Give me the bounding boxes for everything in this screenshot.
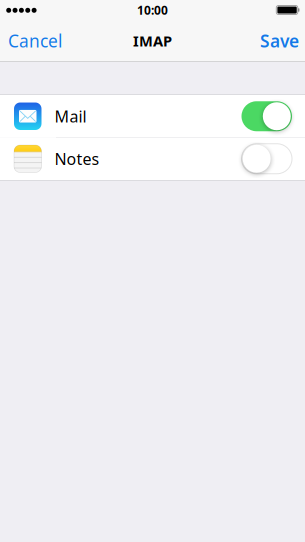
button[interactable]: Notes	[0, 137, 305, 180]
staticText: Notes	[54, 148, 99, 169]
staticText: Mail	[54, 106, 86, 127]
button[interactable]: Off	[235, 138, 305, 180]
staticText: Cancel	[8, 29, 62, 52]
staticText: Save	[260, 29, 299, 52]
button[interactable]: On	[235, 95, 305, 137]
button[interactable]: Save	[253, 20, 305, 61]
staticText: 10:00	[137, 2, 168, 18]
staticText: IMAP	[133, 31, 172, 50]
button[interactable]: Mail	[0, 95, 305, 137]
button[interactable]: Cancel	[0, 20, 70, 61]
